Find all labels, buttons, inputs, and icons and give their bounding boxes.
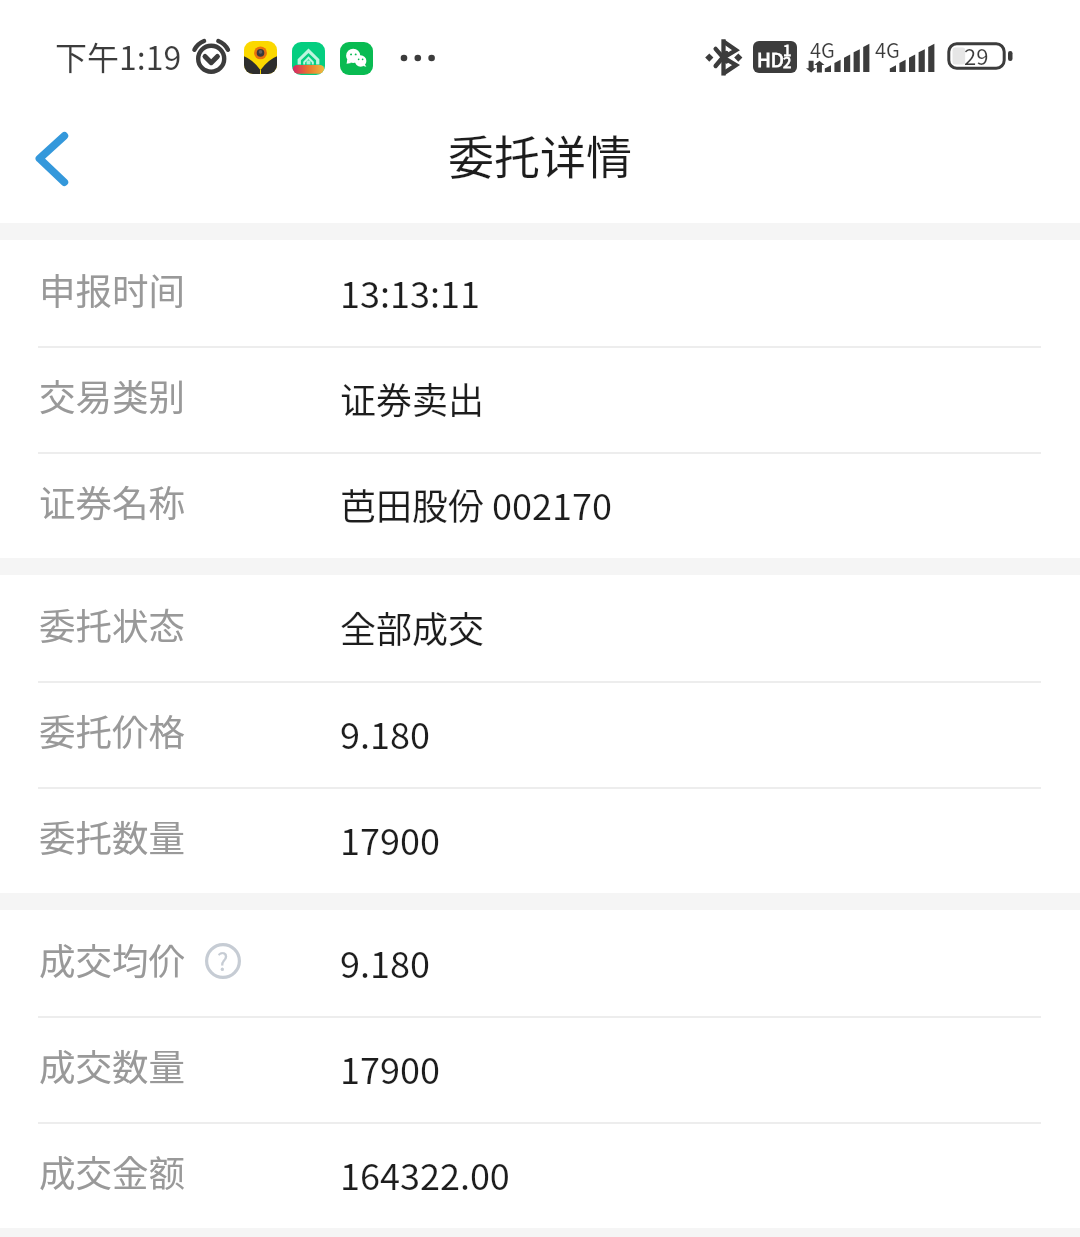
button[interactable]: 委托价格 xyxy=(0,681,1080,787)
staticText: 全部成交 xyxy=(340,601,485,653)
button[interactable]: 成交金额 xyxy=(0,1122,1080,1228)
button[interactable]: 委托状态 xyxy=(0,575,1080,681)
staticText: HD xyxy=(757,45,784,73)
staticText: ? xyxy=(217,943,229,978)
button[interactable]: Back xyxy=(10,120,94,204)
staticText: 委托数量 xyxy=(39,810,185,863)
staticText: 证券卖出 xyxy=(340,372,485,424)
staticText: 申报时间 xyxy=(39,263,185,316)
staticText: 委托状态 xyxy=(39,598,185,651)
staticText: 下午1:19 xyxy=(55,33,182,79)
staticText: 9.180 xyxy=(340,707,430,759)
staticText: 17900 xyxy=(340,813,440,865)
button[interactable]: 成交均价 xyxy=(0,910,1080,1016)
staticText: 成交金额 xyxy=(39,1145,185,1198)
staticText: 成交数量 xyxy=(39,1039,185,1092)
staticText: 29 xyxy=(964,39,989,71)
staticText: 芭田股份 002170 xyxy=(340,478,612,530)
staticText: 委托详情 xyxy=(448,121,632,188)
staticText: 164322.00 xyxy=(340,1148,510,1200)
staticText: 9.180 xyxy=(340,936,430,988)
button[interactable]: 交易类别 xyxy=(0,346,1080,452)
button[interactable]: 委托数量 xyxy=(0,787,1080,893)
staticText: 13:13:11 xyxy=(340,266,480,318)
staticText: 成交均价 xyxy=(39,933,185,986)
staticText: 4G xyxy=(810,35,835,64)
button[interactable]: 成交数量 xyxy=(0,1016,1080,1122)
staticText: 2 xyxy=(783,51,792,73)
staticText: 交易类别 xyxy=(39,369,185,422)
button[interactable]: 证券名称 xyxy=(0,452,1080,558)
button[interactable]: 申报时间 xyxy=(0,240,1080,346)
staticText: 委托价格 xyxy=(39,704,185,757)
staticText: 4G xyxy=(875,35,900,64)
staticText: 1 xyxy=(783,41,792,61)
button[interactable]: Help xyxy=(205,943,241,979)
staticText: 17900 xyxy=(340,1042,440,1094)
staticText: 证券名称 xyxy=(39,475,185,528)
